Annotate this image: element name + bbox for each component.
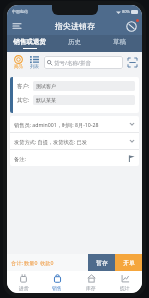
button[interactable]: 测试客户 — [33, 81, 135, 91]
button[interactable]: 开单 — [115, 254, 142, 271]
staticText: 商品 — [14, 64, 23, 70]
button[interactable]: 暂存 — [88, 254, 115, 271]
button[interactable]: 商品 — [10, 55, 26, 70]
button[interactable]: 销售或退货 — [7, 35, 52, 52]
button[interactable]: 销售员: admin001，时间: 8月-10-28 — [10, 116, 139, 132]
staticText: 销售 — [52, 285, 62, 291]
staticText: 指尖进销存 — [55, 21, 95, 31]
staticText: 合计: 数量0 收款0 — [11, 259, 54, 266]
staticText: 备注: — [14, 155, 26, 162]
staticText: 统计 — [120, 285, 130, 291]
button[interactable]: 进货 — [7, 271, 40, 293]
button[interactable]: Support — [124, 19, 139, 34]
button[interactable]: Menu — [10, 19, 24, 33]
staticText: 其它: — [17, 96, 30, 104]
button[interactable]: 扫码 — [126, 56, 139, 69]
staticText: 暂存 — [96, 259, 108, 267]
staticText: 草稿 — [113, 38, 126, 46]
button[interactable]: 历史 — [52, 35, 97, 52]
staticText: 销售员: admin001，时间: 8月-10-28 — [14, 121, 99, 128]
button[interactable]: 库存 — [74, 271, 108, 293]
button[interactable]: 列表 — [26, 55, 42, 70]
other: 标记 — [128, 155, 135, 162]
staticText: 发货方式: 自提，发货状态: 已发 — [14, 138, 87, 145]
button[interactable]: 统计 — [108, 271, 142, 293]
staticText: 列表 — [30, 64, 39, 70]
staticText: 销售或退货 — [13, 38, 46, 46]
staticText: 80% — [122, 9, 130, 14]
button[interactable]: 草稿 — [97, 35, 142, 52]
staticText: 货号/名称/拼音 — [54, 59, 92, 67]
staticText: 开单 — [123, 259, 135, 267]
staticText: 历史 — [68, 38, 81, 46]
button[interactable]: 销售 — [40, 271, 74, 293]
staticText: 默认某某 — [36, 97, 56, 103]
staticText: 测试客户 — [36, 83, 56, 89]
staticText: 进货 — [19, 285, 29, 291]
button[interactable]: 默认某某 — [33, 95, 135, 105]
staticText: 客户: — [17, 82, 30, 90]
button[interactable]: 发货方式: 自提，发货状态: 已发 — [10, 133, 139, 149]
button[interactable]: 备注: — [10, 150, 139, 166]
staticText: 中国电信 — [12, 9, 28, 14]
staticText: 库存 — [86, 285, 96, 291]
button[interactable]: 货号/名称/拼音 — [44, 56, 123, 69]
